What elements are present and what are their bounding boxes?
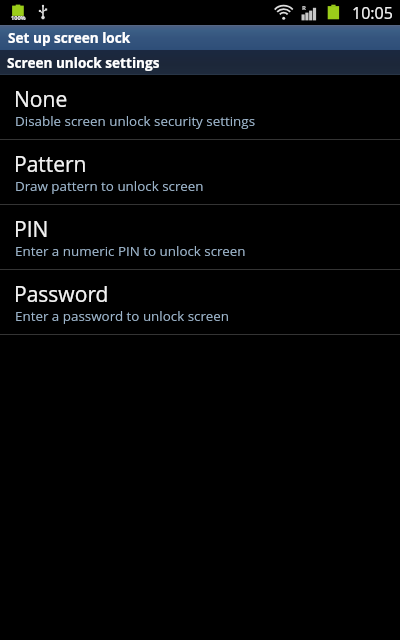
button[interactable]: Pattern xyxy=(0,140,400,204)
other: USB connected xyxy=(37,3,50,22)
staticText: Screen unlock settings xyxy=(7,53,160,72)
other: Wi-Fi signal full xyxy=(272,3,296,22)
staticText: R xyxy=(302,4,306,12)
other: Battery full xyxy=(326,3,340,22)
staticText: Pattern xyxy=(14,150,87,179)
button[interactable]: None xyxy=(0,75,400,139)
staticText: None xyxy=(14,85,68,114)
button[interactable]: PIN xyxy=(0,205,400,269)
staticText: 10:05 xyxy=(352,2,393,24)
other: Battery 100 percent xyxy=(10,3,26,22)
staticText: Set up screen lock xyxy=(8,28,131,47)
staticText: PIN xyxy=(14,215,49,244)
staticText: Draw pattern to unlock screen xyxy=(15,177,204,195)
other: Mobile signal, roaming xyxy=(300,3,317,22)
staticText: 100% xyxy=(11,14,26,22)
staticText: Enter a password to unlock screen xyxy=(15,307,229,325)
staticText: Disable screen unlock security settings xyxy=(15,112,256,130)
button[interactable]: Password xyxy=(0,270,400,334)
staticText: Enter a numeric PIN to unlock screen xyxy=(15,242,246,260)
staticText: Password xyxy=(14,280,109,309)
